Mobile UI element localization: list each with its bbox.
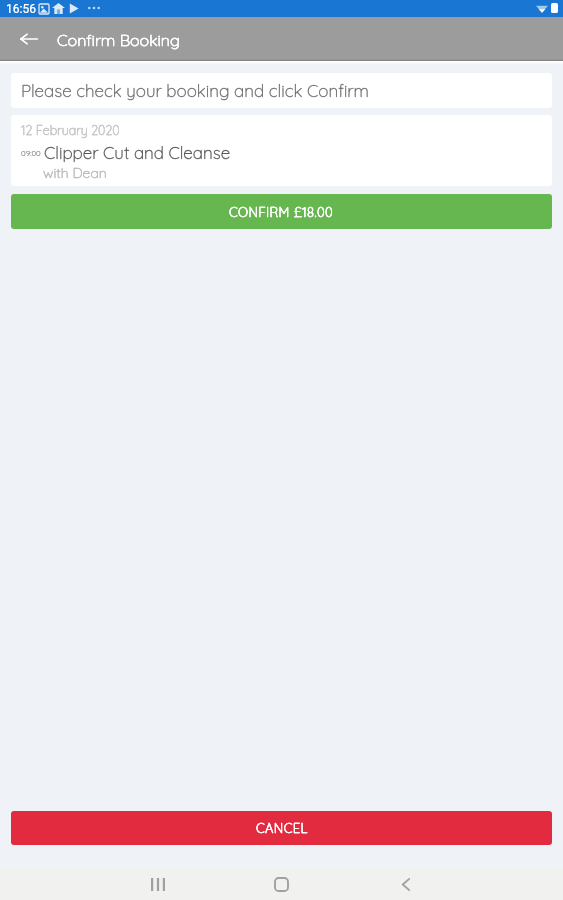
button[interactable]: CONFIRM £18.00 — [11, 194, 552, 229]
staticText: Please check your booking and click Conf… — [21, 80, 370, 101]
button[interactable]: 12 February 2020 — [11, 115, 552, 186]
staticText: 12 February 2020 — [21, 122, 120, 138]
button[interactable]: Home — [259, 868, 304, 900]
staticText: 09:00 — [21, 148, 41, 158]
staticText: Clipper Cut and Cleanse — [44, 142, 231, 163]
staticText: Confirm Booking — [57, 30, 180, 50]
staticText: Clipper Cut and Cleanse — [44, 142, 231, 163]
staticText: CONFIRM £18.00 — [229, 204, 334, 220]
staticText: 12 February 2020 — [21, 122, 120, 138]
staticText: CANCEL — [256, 820, 308, 836]
staticText: 09:00 — [21, 148, 41, 158]
button[interactable]: Back — [383, 868, 428, 900]
staticText: CONFIRM £18.00 — [229, 204, 334, 220]
staticText: with Dean — [43, 164, 107, 182]
staticText: 16:56 — [6, 2, 36, 16]
staticText: Confirm Booking — [57, 30, 180, 50]
button[interactable]: Please check your booking and click Conf… — [11, 73, 552, 108]
staticText: CANCEL — [256, 820, 308, 836]
button[interactable]: Back — [7, 17, 51, 61]
staticText: Please check your booking and click Conf… — [21, 80, 370, 101]
staticText: with Dean — [43, 164, 107, 182]
button[interactable]: Recent apps — [135, 868, 180, 900]
button[interactable]: CANCEL — [11, 811, 552, 845]
